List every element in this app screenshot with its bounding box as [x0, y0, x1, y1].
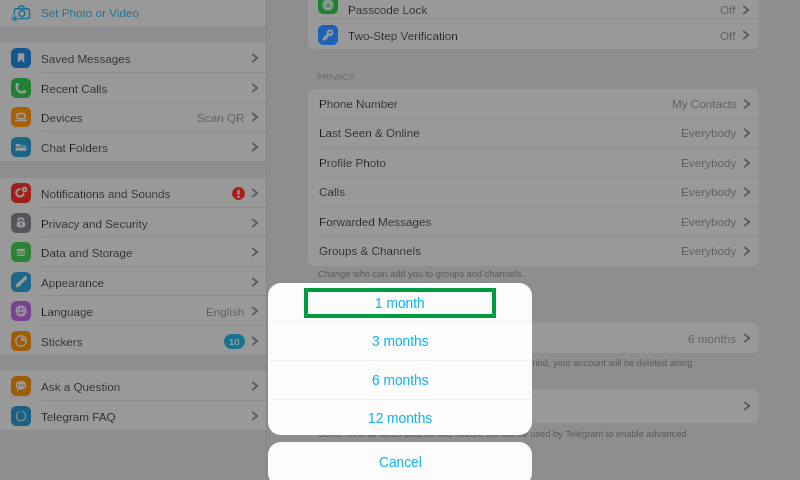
button[interactable]: Privacy and Security [0, 208, 266, 238]
staticText: Passcode Lock [348, 3, 428, 16]
staticText: Appearance [41, 276, 105, 289]
button[interactable]: 12 months [268, 399, 532, 435]
button[interactable]: 6 months [268, 360, 532, 399]
staticText: Set Photo or Video [41, 6, 139, 19]
staticText: My Contacts [672, 97, 737, 110]
staticText: Calls [319, 185, 345, 198]
button[interactable]: Delete Secret Chats [308, 389, 759, 423]
button[interactable]: Saved Messages [0, 43, 266, 73]
staticText: Everybody [681, 215, 737, 228]
button[interactable]: Phone Number [308, 89, 759, 118]
staticText: 1 month [375, 296, 425, 311]
staticText: 6 months [372, 373, 429, 388]
staticText: Off [720, 29, 736, 42]
button[interactable]: Stickers [0, 326, 266, 356]
staticText: Some minimal cloud data for this feature… [318, 429, 687, 439]
button[interactable]: Last Seen & Online [308, 118, 759, 147]
staticText: Devices [41, 111, 83, 124]
staticText: Data and Storage [41, 246, 133, 259]
button[interactable]: Set photo or video [0, 0, 266, 26]
staticText: Ask a Question [41, 380, 121, 393]
staticText: Off [720, 3, 736, 16]
staticText: Saved Messages [41, 52, 131, 65]
staticText: Telegram FAQ [41, 410, 116, 423]
staticText: If Away For [319, 332, 378, 345]
button[interactable]: 1 month [268, 283, 532, 321]
button[interactable]: Appearance [0, 267, 266, 297]
staticText: Cancel [379, 455, 422, 470]
button[interactable]: Devices [0, 102, 266, 132]
staticText: 3 months [372, 334, 429, 349]
staticText: Language [41, 305, 94, 318]
button[interactable]: Data and Storage [0, 237, 266, 267]
staticText: Phone Number [319, 97, 398, 110]
staticText: 12 months [368, 411, 433, 426]
staticText: 6 months [688, 332, 737, 345]
staticText: Stickers [41, 335, 83, 348]
button[interactable]: Calls [308, 177, 759, 206]
button[interactable]: Groups & Channels [308, 236, 759, 265]
staticText: English [206, 305, 245, 318]
button[interactable]: If Away For [308, 323, 759, 353]
staticText: Recent Calls [41, 82, 108, 95]
staticText: Everybody [681, 156, 737, 169]
button[interactable]: Language [0, 296, 266, 326]
staticText: Everybody [681, 185, 737, 198]
staticText: Last Seen & Online [319, 126, 420, 139]
staticText: Everybody [681, 126, 737, 139]
staticText: Forwarded Messages [319, 215, 432, 228]
staticText: Chat Folders [41, 141, 108, 154]
button[interactable]: Profile Photo [308, 148, 759, 177]
staticText: Privacy and Security [41, 217, 148, 230]
staticText: 10 [229, 336, 240, 347]
staticText: PRIVACY [317, 72, 355, 82]
button[interactable]: Notifications and Sounds [0, 178, 266, 208]
button[interactable]: Passcode Lock [308, 0, 759, 19]
other: Set photo or video [12, 5, 31, 22]
staticText: Groups & Channels [319, 244, 421, 257]
button[interactable]: Recent Calls [0, 73, 266, 103]
button[interactable]: Ask a Question [0, 371, 266, 401]
staticText: Change who can add you to groups and cha… [318, 269, 525, 279]
button[interactable]: Two-Step Verification [308, 20, 759, 49]
button[interactable]: Telegram FAQ [0, 401, 266, 431]
staticText: Notifications and Sounds [41, 187, 171, 200]
button[interactable]: Cancel [268, 442, 532, 480]
staticText: Delete Secret Chats [319, 400, 424, 413]
button[interactable]: Forwarded Messages [308, 207, 759, 236]
button[interactable]: 3 months [268, 321, 532, 360]
staticText: Everybody [681, 244, 737, 257]
staticText: Profile Photo [319, 156, 386, 169]
staticText: Two-Step Verification [348, 29, 458, 42]
button[interactable]: Chat Folders [0, 132, 266, 162]
staticText: If you do not come online at least once … [318, 358, 693, 368]
staticText: Scan QR [197, 111, 245, 124]
